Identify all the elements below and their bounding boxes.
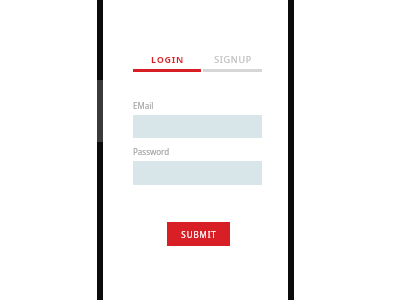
button[interactable]: SUBMIT [167,222,230,246]
staticText: Password [133,146,170,157]
button[interactable]: LOGIN [133,53,201,72]
staticText: LOGIN [151,53,184,65]
staticText: SUBMIT [181,229,217,240]
button[interactable]: SIGNUP [203,53,262,72]
staticText: EMail [133,100,154,111]
staticText: SIGNUP [214,53,252,65]
